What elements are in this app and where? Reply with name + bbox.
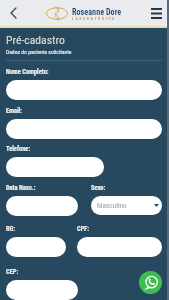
staticText: Telefone: — [6, 145, 31, 153]
button[interactable] — [6, 196, 78, 216]
button[interactable] — [6, 280, 78, 300]
button[interactable] — [6, 80, 162, 100]
staticText: LABORATÓRIOS — [72, 17, 117, 21]
staticText: Roseanne Dore — [72, 7, 122, 17]
button[interactable] — [77, 237, 162, 257]
button[interactable]: WhatsApp — [139, 271, 162, 294]
button[interactable] — [6, 157, 104, 177]
button[interactable]: Back — [0, 0, 26, 26]
staticText: RG: — [6, 225, 16, 233]
staticText: Masculino — [97, 201, 127, 210]
button[interactable]: Menu — [143, 0, 169, 26]
staticText: Email: — [6, 107, 22, 115]
staticText: CEP: — [6, 268, 19, 276]
button[interactable] — [6, 119, 162, 139]
staticText: Sexo: — [91, 184, 106, 192]
staticText: Data Nasc.: — [6, 184, 36, 192]
staticText: CPF: — [77, 225, 90, 233]
staticText: Nome Completo: — [6, 68, 49, 76]
button[interactable]: Masculino — [91, 196, 162, 215]
staticText: Dados do paciente solicitante — [6, 49, 72, 56]
staticText: Pré-cadastro — [6, 33, 65, 47]
button[interactable] — [6, 237, 66, 257]
